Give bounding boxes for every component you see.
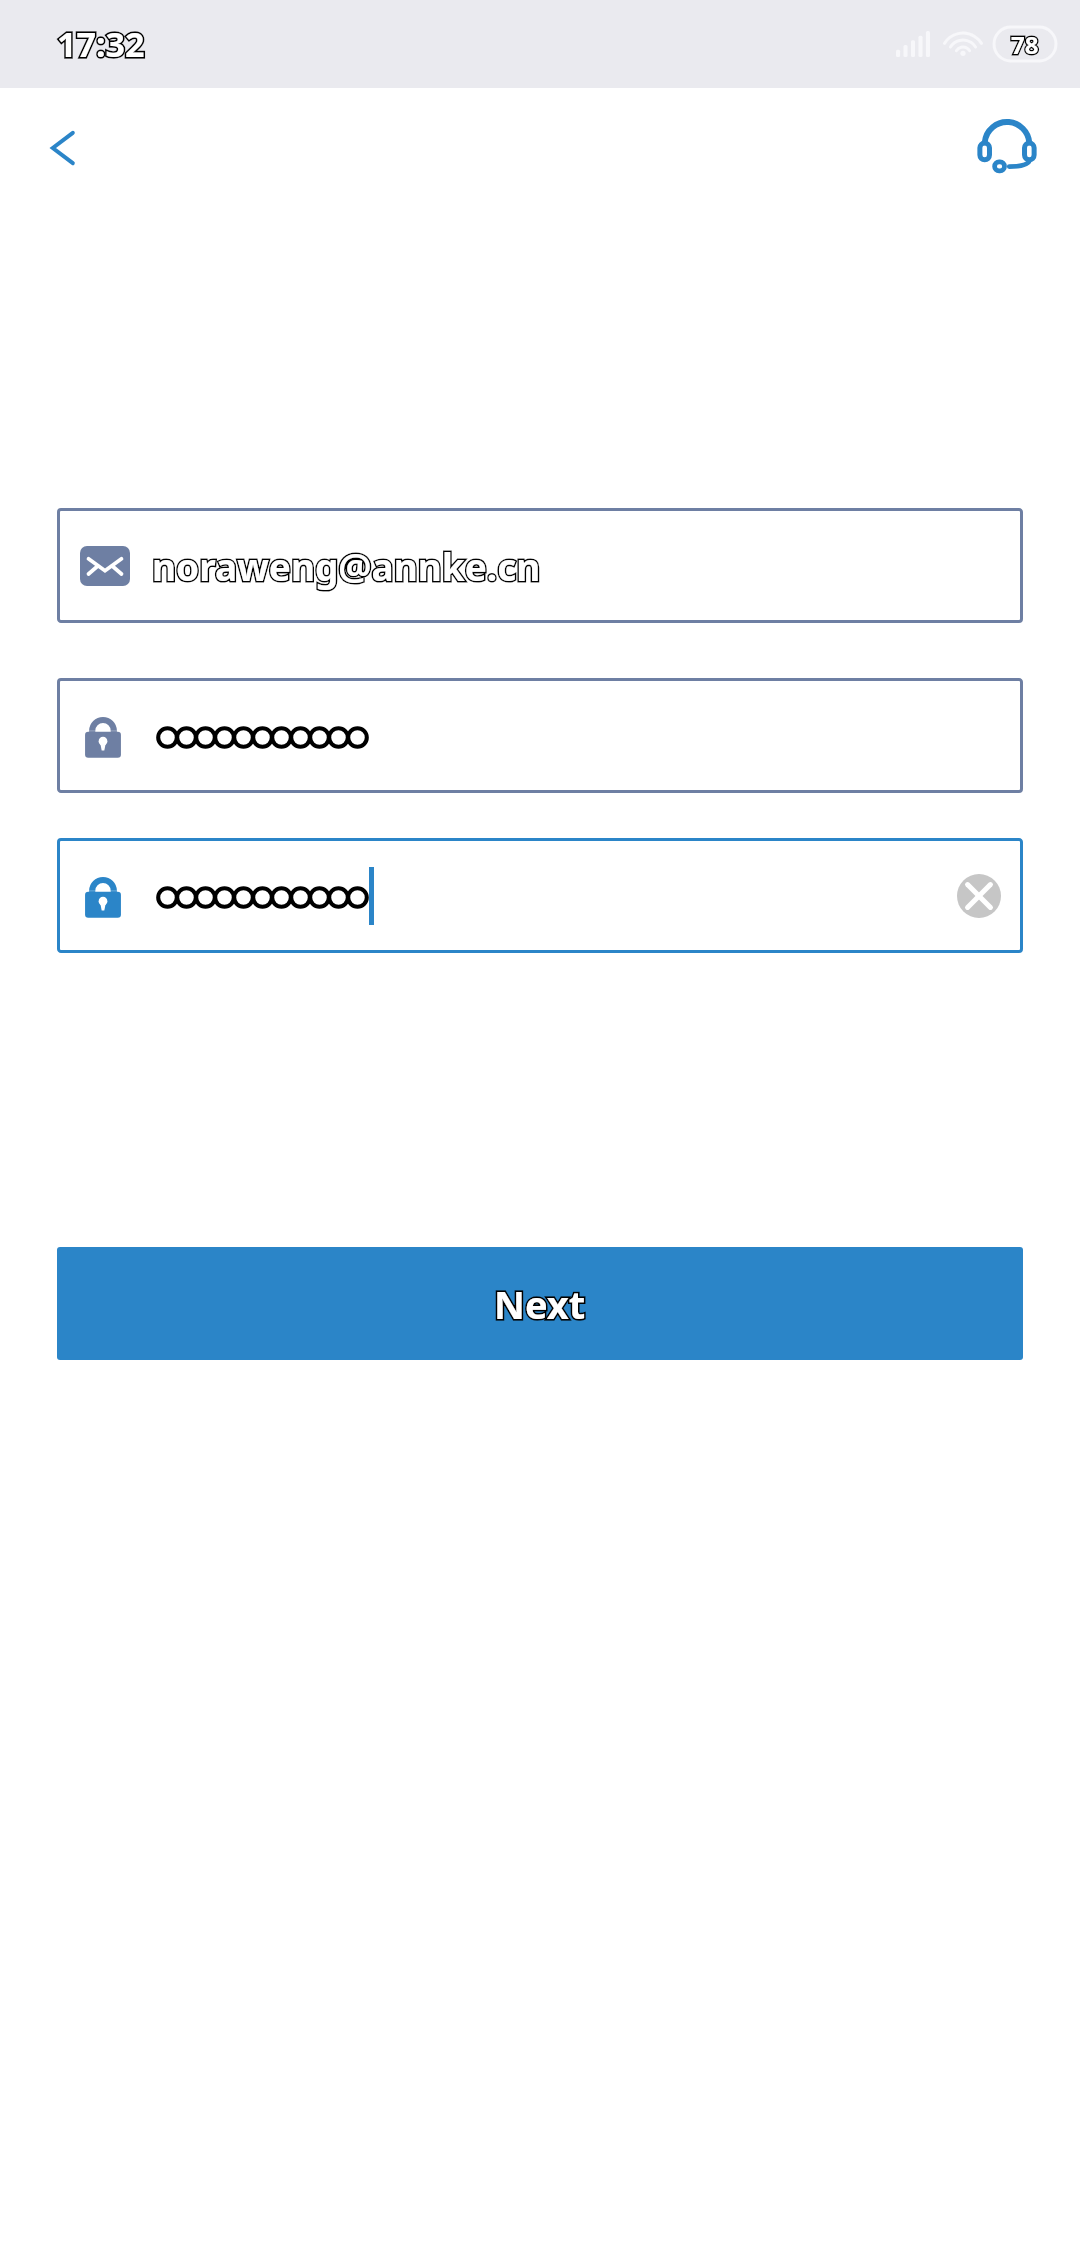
- button[interactable]: [57, 678, 1023, 793]
- staticText: 17:32: [57, 21, 145, 67]
- button[interactable]: Clear text: [57, 838, 1023, 953]
- staticText: 78: [1011, 28, 1039, 61]
- staticText: Next: [494, 1278, 586, 1330]
- staticText: Next: [494, 1278, 586, 1330]
- button[interactable]: Back: [24, 108, 104, 188]
- staticText: 17:32: [57, 21, 145, 67]
- button[interactable]: Next: [57, 1247, 1023, 1360]
- button[interactable]: noraweng@annke.cn: [57, 508, 1023, 623]
- button[interactable]: Clear text: [953, 870, 1005, 922]
- staticText: noraweng@annke.cn: [152, 541, 541, 591]
- button[interactable]: Customer support: [964, 105, 1050, 191]
- staticText: noraweng@annke.cn: [152, 541, 541, 591]
- staticText: 78: [1011, 28, 1039, 61]
